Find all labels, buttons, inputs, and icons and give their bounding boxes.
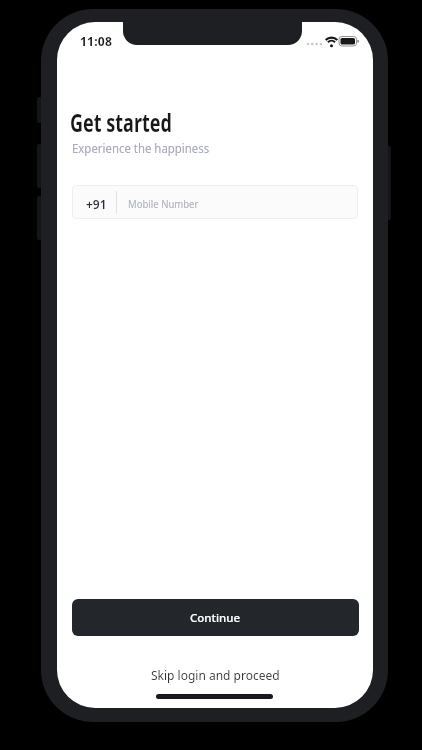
staticText: Experience the happiness xyxy=(72,140,210,156)
staticText: 11:08 xyxy=(80,32,113,50)
button[interactable]: Continue xyxy=(72,599,359,636)
button[interactable]: +91 xyxy=(72,185,358,219)
staticText: Continue xyxy=(190,610,241,626)
staticText: Skip login and proceed xyxy=(151,667,280,683)
staticText: +91 xyxy=(86,196,107,212)
button[interactable]: Skip login and proceed xyxy=(57,667,373,683)
staticText: Get started xyxy=(70,105,172,139)
staticText: Mobile Number xyxy=(128,197,199,211)
